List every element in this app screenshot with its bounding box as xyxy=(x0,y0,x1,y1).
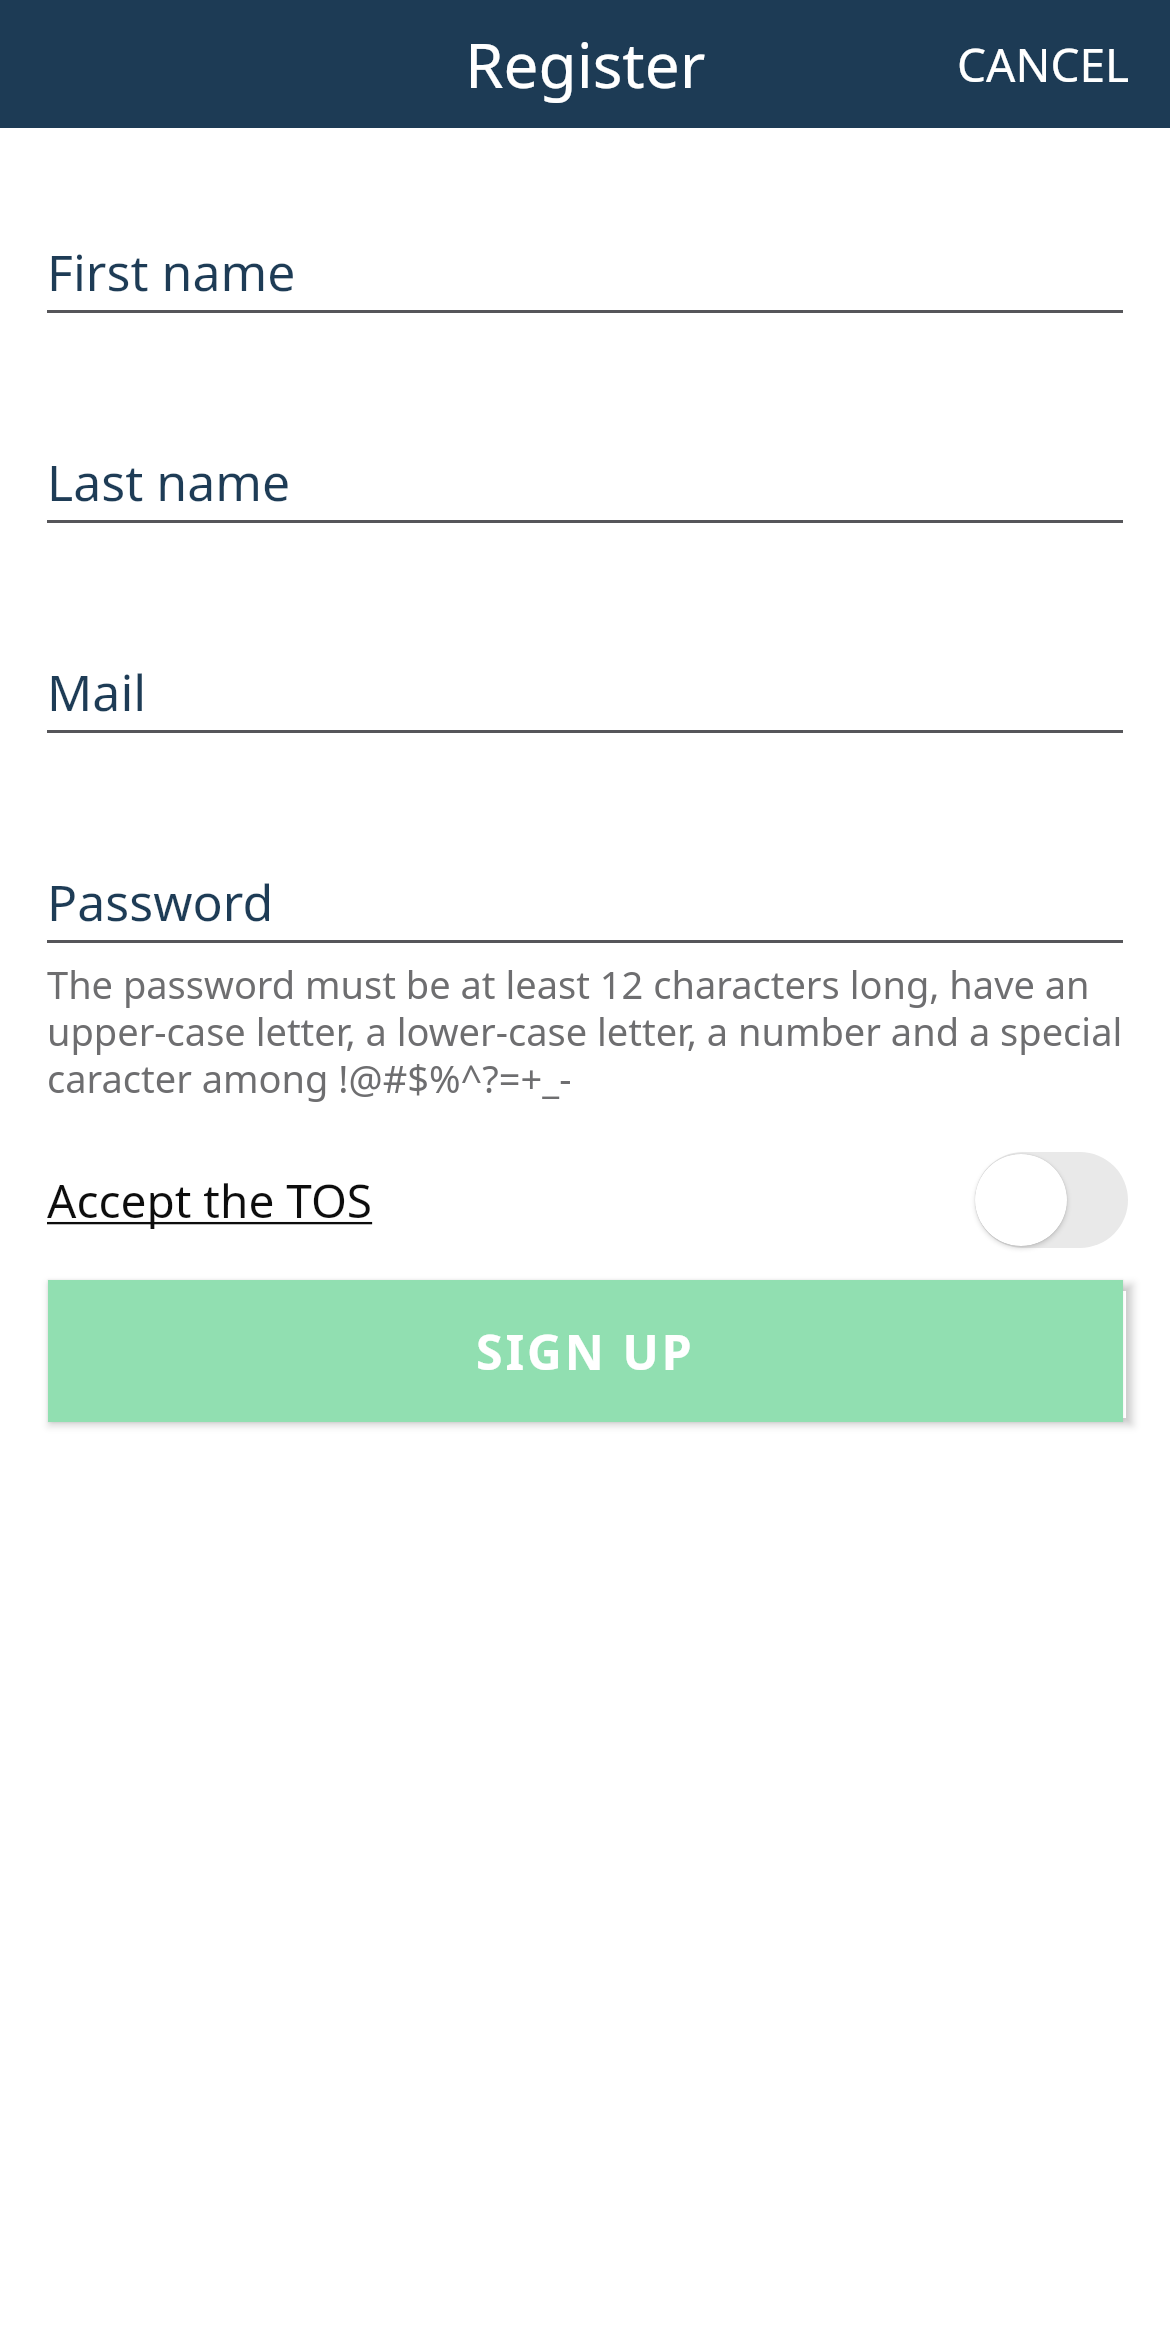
staticText: Accept the TOS xyxy=(47,1169,373,1232)
staticText: SIGN UP xyxy=(476,1319,695,1384)
staticText: Mail xyxy=(47,658,147,726)
staticText: The password must be at least 12 charact… xyxy=(47,958,1127,1104)
staticText: First name xyxy=(47,238,296,306)
staticText: Password xyxy=(47,868,274,936)
staticText: CANCEL xyxy=(957,33,1130,96)
button[interactable]: Accept the TOS xyxy=(47,1169,373,1232)
button[interactable]: Accept the TOS switch xyxy=(975,1152,1128,1248)
button[interactable] xyxy=(47,200,1123,313)
staticText: Register xyxy=(465,22,706,106)
button[interactable]: SIGN UP xyxy=(48,1280,1123,1422)
button[interactable]: CANCEL xyxy=(917,11,1170,118)
staticText: Last name xyxy=(47,448,291,516)
button[interactable] xyxy=(47,620,1123,733)
button[interactable] xyxy=(47,830,1123,943)
button[interactable] xyxy=(47,410,1123,523)
